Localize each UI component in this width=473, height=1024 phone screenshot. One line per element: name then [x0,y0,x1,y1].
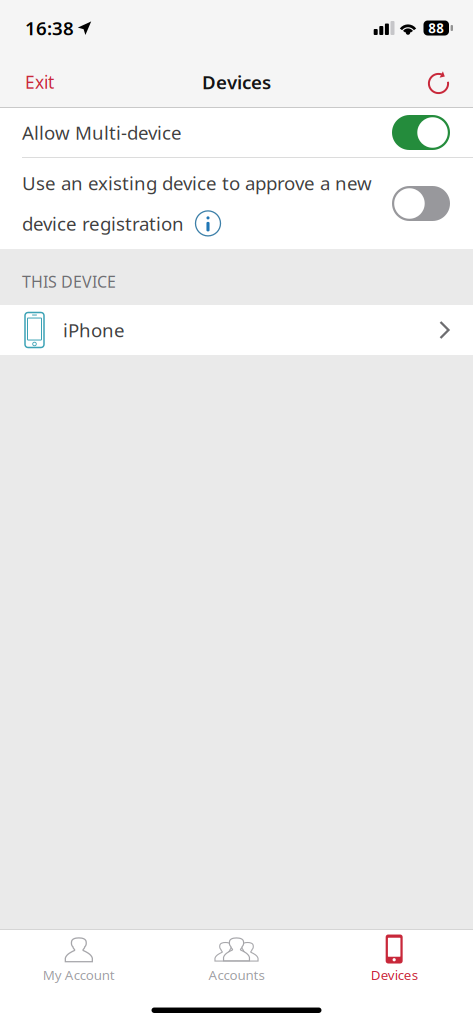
button[interactable]: Accounts [158,929,315,984]
staticText: Allow Multi-device [22,120,182,145]
staticText: iPhone [63,318,125,342]
button[interactable]: My Account [0,929,158,984]
staticText: 88 [428,19,444,37]
staticText: My Account [43,966,115,984]
staticText: Exit [25,70,54,93]
staticText: 16:38 [25,16,74,40]
button[interactable]: Devices [315,929,473,984]
staticText: device registration [22,211,184,236]
staticText: Devices [202,70,271,94]
staticText: THIS DEVICE [22,271,116,292]
button[interactable]: iPhone [0,305,473,355]
staticText: Accounts [208,966,264,984]
staticText: Devices [371,966,418,984]
button[interactable]: Refresh [408,56,473,108]
staticText: Use an existing device to approve a new [22,171,372,195]
button[interactable]: Allow Multi-device [0,108,473,157]
button[interactable]: Exit [0,56,72,108]
button[interactable]: Use an existing device to approve a new [0,158,473,249]
